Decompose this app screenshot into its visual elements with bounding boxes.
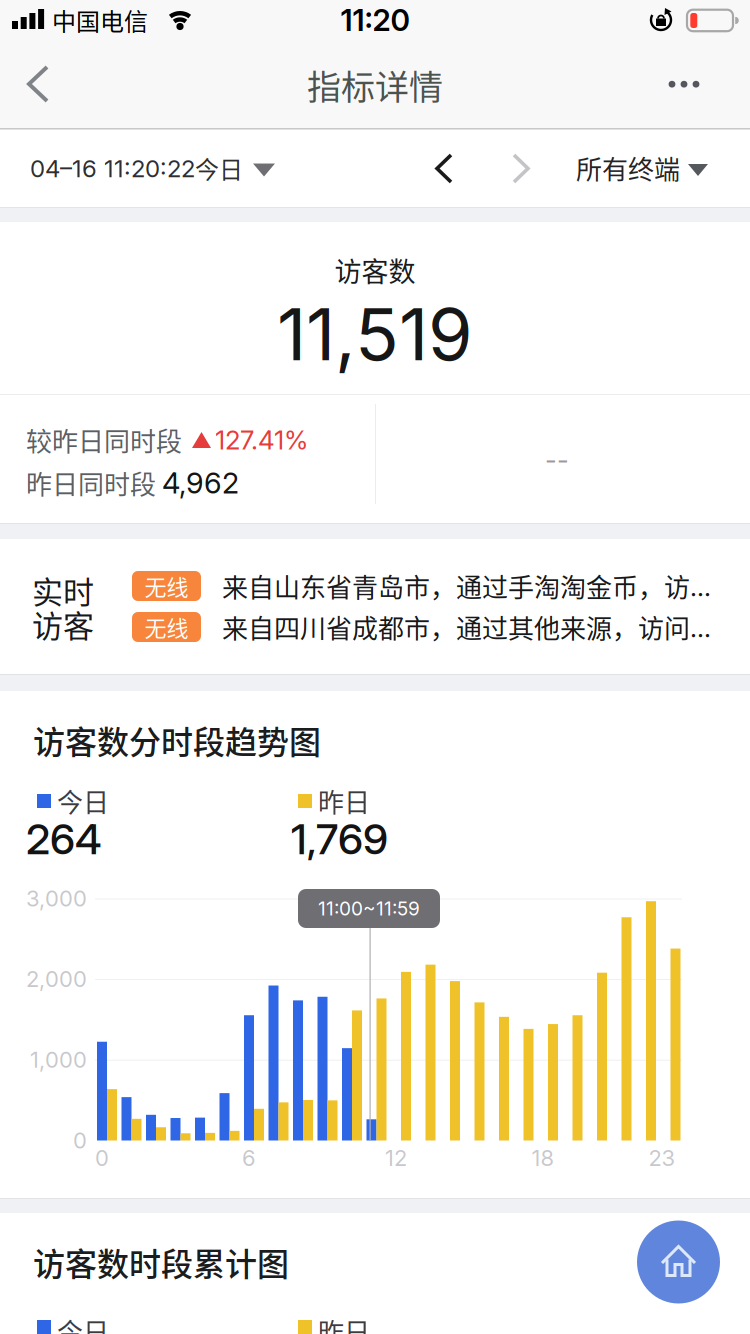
staticText: 11:00~11:59 [318,897,420,920]
staticText: 2,000 [26,966,87,992]
staticText: 指标详情 [307,61,443,109]
staticText: 今日 [57,1313,109,1334]
staticText: 昨日 [318,1313,370,1334]
staticText: 11:20 [340,2,409,38]
staticText: 来自山东省青岛市，通过手淘淘金币，访... [222,568,711,604]
staticText: 访客数时段累计图 [33,1239,289,1285]
staticText: 23 [648,1145,675,1171]
staticText: 127.41% [215,425,308,455]
staticText: 无线 [144,611,188,643]
staticText: 4,962 [162,466,239,500]
staticText: 昨日同时段 [26,465,156,501]
staticText: 较昨日同时段 [26,422,182,458]
staticText: -- [545,445,569,475]
staticText: 访客数 [334,251,415,289]
staticText: 3,000 [26,885,87,911]
staticText: 实时 [32,568,94,612]
staticText: 18 [531,1145,554,1171]
staticText: 所有终端 [576,150,680,186]
staticText: 无线 [144,570,188,602]
staticText: 访客 [32,602,94,646]
staticText: 11,519 [277,291,473,376]
staticText: 6 [242,1145,256,1171]
staticText: 12 [385,1145,407,1171]
staticText: 访客数分时段趋势图 [33,717,321,763]
staticText: 0 [73,1127,87,1153]
staticText: 中国电信 [52,3,148,37]
staticText: 04–16 11:20:22今日 [30,151,243,185]
staticText: 1,000 [30,1047,87,1073]
staticText: 264 [26,814,102,864]
staticText: 0 [95,1145,109,1171]
staticText: 昨日 [318,783,370,819]
staticText: 1,769 [291,814,388,864]
staticText: 今日 [57,783,109,819]
staticText: 来自四川省成都市，通过其他来源，访问... [222,609,711,645]
